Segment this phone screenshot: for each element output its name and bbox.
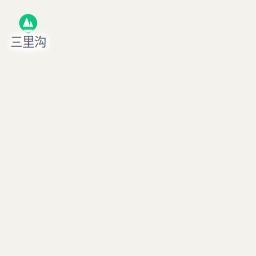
button[interactable]: 三里沟 (10, 14, 46, 48)
staticText: 三里沟 (10, 32, 46, 50)
